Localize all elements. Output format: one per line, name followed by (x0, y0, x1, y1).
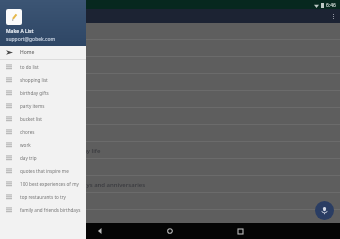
button[interactable] (0, 74, 340, 91)
button[interactable] (0, 57, 340, 74)
button[interactable]: Home (0, 46, 86, 59)
button[interactable]: chores (0, 125, 86, 138)
staticText: 100 best experiences of my life (12, 147, 101, 155)
staticText: Home (20, 49, 35, 56)
button[interactable]: party items (0, 99, 86, 112)
button[interactable]: birthday gifts (0, 86, 86, 99)
button[interactable]: bucket list (0, 112, 86, 125)
button[interactable]: Home (135, 223, 205, 239)
staticText: day trip (20, 155, 37, 161)
button[interactable] (0, 159, 340, 176)
button[interactable]: Back (65, 223, 135, 239)
staticText: 100 best experiences of my life (20, 181, 86, 187)
button[interactable] (0, 40, 340, 57)
staticText: bucket list (20, 116, 42, 122)
staticText: Make A List (6, 28, 34, 35)
staticText: top restaurants to try (20, 194, 66, 200)
staticText: to do list (20, 64, 39, 70)
button[interactable]: family and friends birthdays and (0, 203, 86, 216)
staticText: family and friends birthdays and (20, 207, 86, 213)
button[interactable]: family and friends birthdays and anniver… (0, 176, 340, 193)
staticText: birthday gifts (20, 90, 49, 96)
staticText: quotes that inspire me (20, 168, 69, 174)
staticText: shopping list (20, 77, 48, 83)
staticText: family and friends birthdays and anniver… (12, 181, 146, 189)
button[interactable]: More options (326, 9, 340, 23)
button[interactable] (0, 23, 340, 40)
button[interactable]: to do list (0, 60, 86, 73)
staticText: chores (20, 129, 35, 135)
button[interactable] (0, 125, 340, 142)
button[interactable] (0, 91, 340, 108)
button[interactable]: top restaurants to try (0, 190, 86, 203)
button[interactable]: shopping list (0, 73, 86, 86)
button[interactable]: 100 best experiences of my life (0, 142, 340, 159)
button[interactable] (0, 108, 340, 125)
button[interactable]: Voice input (315, 201, 334, 220)
button[interactable] (0, 193, 340, 210)
staticText: 6:46 (326, 2, 336, 9)
button[interactable]: Recents (205, 223, 275, 239)
staticText: party items (20, 103, 45, 109)
staticText: support@gobek.com (6, 36, 56, 43)
button[interactable]: 100 best experiences of my life (0, 177, 86, 190)
staticText: work (20, 142, 31, 148)
button[interactable]: day trip (0, 151, 86, 164)
button[interactable]: Make A List (0, 0, 86, 46)
button[interactable]: work (0, 138, 86, 151)
button[interactable]: quotes that inspire me (0, 164, 86, 177)
